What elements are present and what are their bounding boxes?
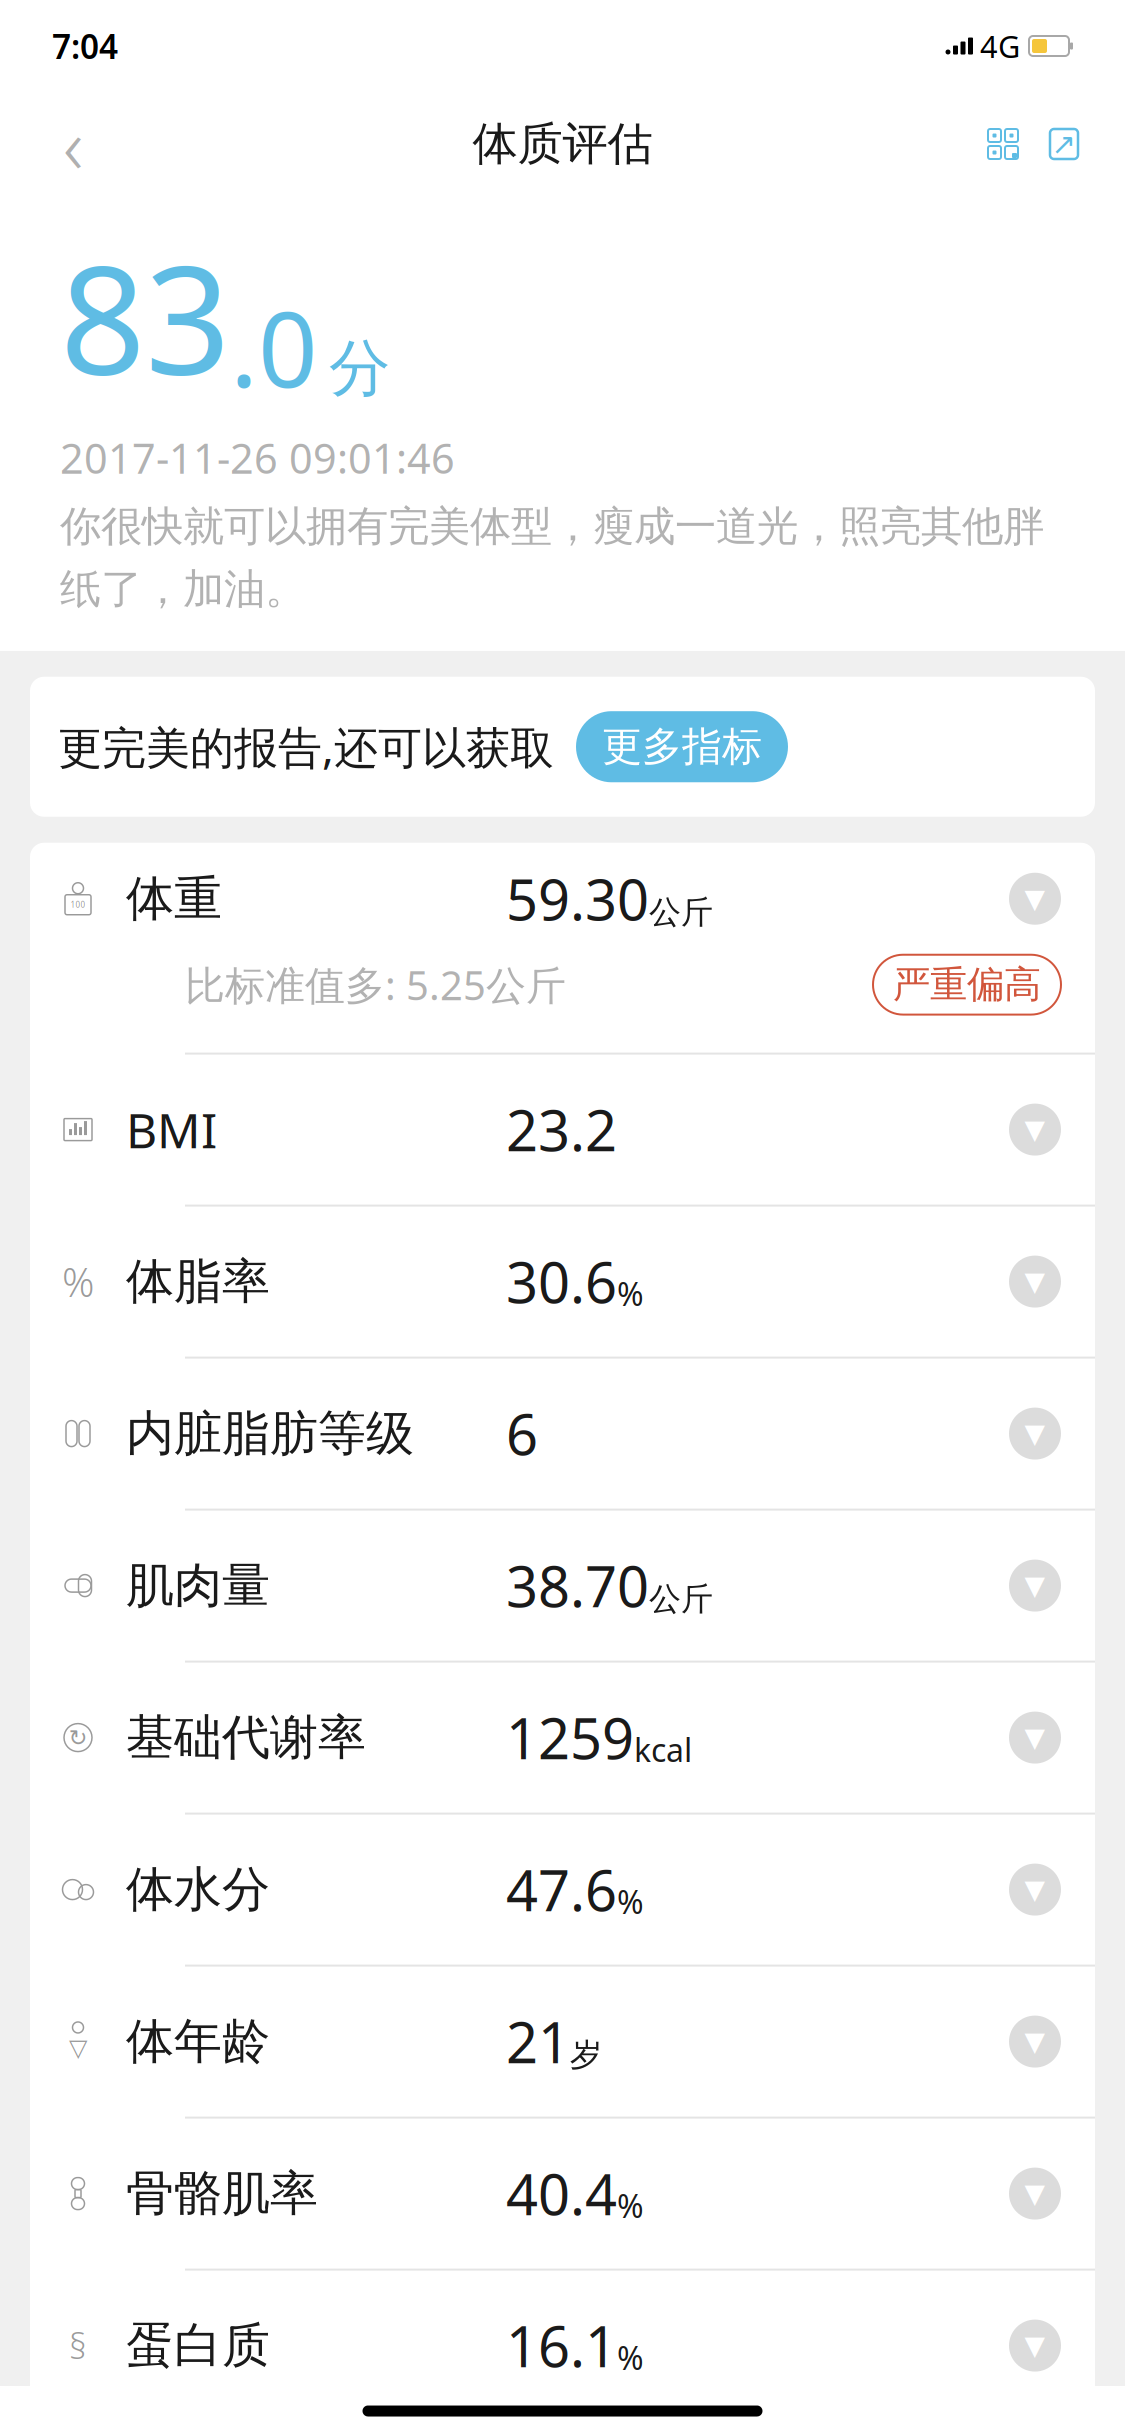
staticText: ▼ [1024, 1874, 1045, 1905]
button[interactable]: 100 [30, 843, 1095, 1055]
button[interactable]: 更完美的报告,还可以获取 [30, 677, 1095, 817]
staticText: 7:04 [52, 24, 118, 68]
button[interactable]: 肌肉量 [30, 1511, 1095, 1663]
button[interactable]: 返回 [30, 101, 116, 187]
button[interactable]: BMI [30, 1055, 1095, 1207]
staticText: kcal [634, 1728, 692, 1771]
staticText: 公斤 [649, 893, 713, 932]
staticText: 23.2 [506, 1092, 617, 1167]
staticText: ▼ [1024, 1570, 1045, 1601]
staticText: ▼ [1024, 1114, 1045, 1145]
staticText: 40.4 [506, 2156, 617, 2231]
staticText: 骨骼肌率 [126, 2164, 318, 2223]
staticText: 更多指标 [602, 722, 762, 771]
staticText: 你很快就可以拥有完美体型，瘦成一道光，照亮其他胖纸了，加油。 [60, 501, 1044, 615]
staticText: .0 [230, 278, 317, 416]
staticText: 59.30 [506, 861, 649, 936]
staticText: ▽ [69, 2034, 87, 2061]
staticText: 83 [60, 218, 230, 416]
staticText: 体年龄 [126, 2012, 270, 2071]
staticText: ↻ [68, 1725, 87, 1750]
staticText: ‹ [63, 93, 83, 195]
staticText: 比标准值多: 5.25公斤 [185, 958, 566, 1011]
staticText: 基础代谢率 [126, 1708, 366, 1767]
staticText: % [617, 2336, 644, 2379]
staticText: ▼ [1024, 2330, 1045, 2361]
button[interactable]: % [30, 1207, 1095, 1359]
button[interactable]: ↻ [30, 1663, 1095, 1815]
staticText: 更完美的报告,还可以获取 [58, 717, 554, 776]
staticText: 内脏脂肪等级 [126, 1404, 414, 1463]
staticText: 体质评估 [472, 116, 652, 172]
staticText: ▼ [1024, 1266, 1045, 1297]
staticText: ▼ [1024, 1418, 1045, 1449]
staticText: BMI [126, 1098, 217, 1161]
staticText: 蛋白质 [126, 2316, 270, 2375]
staticText: 30.6 [506, 1244, 617, 1319]
staticText: ▼ [1024, 2026, 1045, 2057]
staticText: 岁 [570, 2035, 602, 2075]
button[interactable]: 内脏脂肪等级 [30, 1359, 1095, 1511]
staticText: 47.6 [506, 1852, 617, 1927]
staticText: 肌肉量 [126, 1556, 270, 1615]
button[interactable]: 体水分 [30, 1815, 1095, 1967]
staticText: 100 [70, 899, 85, 910]
staticText: 公斤 [649, 1579, 713, 1619]
staticText: 4G [980, 26, 1020, 66]
staticText: 严重偏高 [893, 962, 1041, 1008]
staticText: ▼ [1024, 884, 1045, 914]
staticText: 21 [506, 2004, 570, 2079]
staticText: 38.70 [506, 1548, 649, 1623]
staticText: 体重 [126, 869, 222, 928]
staticText: ↗ [1051, 127, 1076, 161]
button[interactable]: 分享 [1033, 108, 1095, 180]
button[interactable]: § [30, 2271, 1095, 2421]
staticText: 体脂率 [126, 1252, 270, 1311]
button[interactable]: 骨骼肌率 [30, 2119, 1095, 2271]
button[interactable]: 二维码 [973, 108, 1033, 180]
staticText: § [69, 2323, 87, 2369]
staticText: 16.1 [506, 2308, 617, 2383]
staticText: 体水分 [126, 1860, 270, 1919]
staticText: % [62, 1255, 94, 1308]
staticText: % [617, 1880, 644, 1923]
button[interactable]: ▽ [30, 1967, 1095, 2119]
staticText: 6 [506, 1396, 538, 1471]
staticText: % [617, 2184, 644, 2227]
staticText: ▼ [1024, 2178, 1045, 2209]
staticText: 分 [329, 331, 390, 406]
staticText: 2017-11-26 09:01:46 [60, 430, 455, 485]
staticText: ▼ [1024, 1722, 1045, 1753]
staticText: % [617, 1272, 644, 1315]
staticText: 1259 [506, 1700, 634, 1775]
